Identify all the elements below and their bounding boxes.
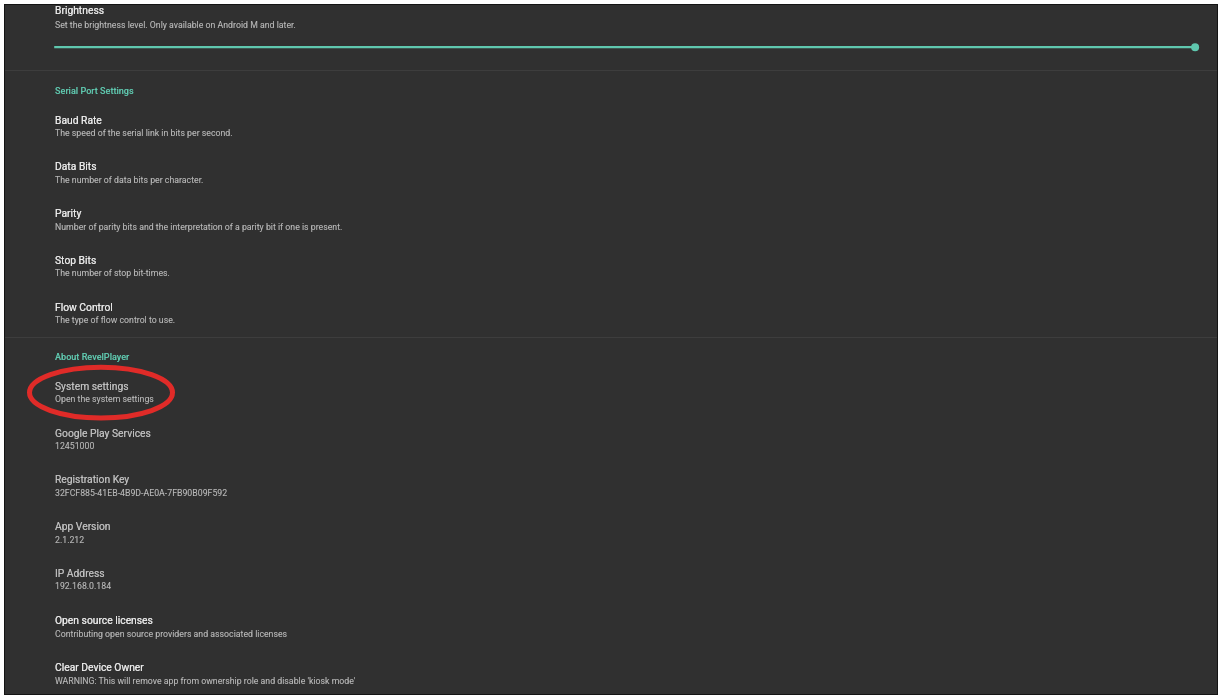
staticText: Flow Control (55, 301, 113, 313)
button[interactable]: Google Play Services (4, 425, 1218, 469)
button[interactable]: System settings (4, 378, 1218, 422)
staticText: Open source licenses (55, 614, 153, 626)
staticText: Open the system settings (55, 394, 154, 404)
button[interactable]: Registration Key (4, 471, 1218, 515)
button[interactable]: Flow Control (4, 299, 1218, 336)
button[interactable]: Data Bits (4, 158, 1218, 202)
staticText: 192.168.0.184 (55, 581, 112, 591)
staticText: IP Address (55, 567, 105, 579)
staticText: The type of flow control to use. (55, 315, 176, 325)
staticText: The number of stop bit-times. (55, 268, 170, 278)
button[interactable]: Clear Device Owner (4, 659, 1218, 695)
staticText: Clear Device Owner (55, 661, 144, 673)
staticText: Data Bits (55, 160, 97, 172)
button[interactable]: Baud Rate (4, 112, 1218, 156)
staticText: Parity (55, 207, 82, 219)
staticText: Contributing open source providers and a… (55, 629, 288, 639)
staticText: Serial Port Settings (55, 86, 134, 97)
button[interactable]: Open source licenses (4, 612, 1218, 656)
staticText: 32FCF885-41EB-4B9D-AE0A-7FB90B09F592 (55, 488, 228, 498)
staticText: WARNING: This will remove app from owner… (55, 676, 356, 686)
staticText: App Version (55, 520, 111, 532)
button[interactable]: Stop Bits (4, 252, 1218, 296)
staticText: 2.1.212 (55, 535, 85, 545)
staticText: Brightness (55, 4, 105, 16)
staticText: The number of data bits per character. (55, 175, 204, 185)
staticText: Stop Bits (55, 254, 97, 266)
button[interactable]: Parity (4, 205, 1218, 249)
staticText: System settings (55, 380, 129, 392)
staticText: Google Play Services (55, 427, 151, 439)
staticText: 12451000 (55, 441, 95, 451)
button[interactable]: Brightness level slider (4, 36, 1218, 66)
button[interactable]: Brightness (4, 2, 1218, 35)
staticText: Registration Key (55, 473, 130, 485)
staticText: About RevelPlayer (55, 352, 130, 363)
staticText: Set the brightness level. Only available… (55, 20, 296, 30)
staticText: Number of parity bits and the interpreta… (55, 222, 343, 232)
staticText: The speed of the serial link in bits per… (55, 128, 233, 138)
button[interactable]: App Version (4, 518, 1218, 562)
button[interactable]: IP Address (4, 565, 1218, 609)
staticText: Baud Rate (55, 114, 102, 126)
